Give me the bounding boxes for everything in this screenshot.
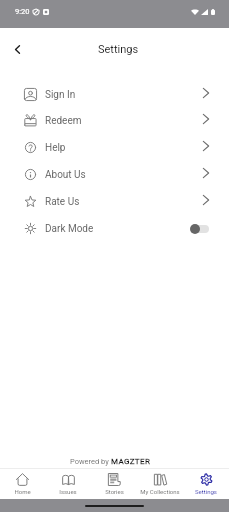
staticText: Help [45, 142, 66, 154]
staticText: My Collections [140, 488, 180, 495]
staticText: About Us [45, 169, 86, 181]
staticText: Issues [59, 488, 77, 495]
button[interactable]: My Collections [137, 469, 183, 499]
staticText: 9:20 [15, 7, 30, 16]
staticText: Redeem [45, 115, 82, 127]
staticText: Settings [195, 488, 217, 495]
button[interactable]: Help [0, 134, 229, 161]
button[interactable]: Rate Us [0, 188, 229, 215]
staticText: Powered by [70, 457, 111, 466]
staticText: MAGZTER [111, 457, 151, 466]
button[interactable]: Issues [45, 469, 91, 499]
button[interactable]: Back [2, 34, 32, 64]
button[interactable]: Sign In [0, 81, 229, 108]
button[interactable]: About Us [0, 161, 229, 188]
button[interactable]: Settings [183, 469, 229, 499]
staticText: Settings [98, 43, 139, 56]
button[interactable]: Redeem [0, 107, 229, 134]
staticText: Home [14, 488, 31, 495]
staticText: Dark Mode [45, 223, 94, 235]
button[interactable]: Home [0, 469, 45, 499]
button[interactable]: Stories [91, 469, 137, 499]
staticText: Sign In [45, 89, 76, 101]
button[interactable]: Toggle dark mode [190, 223, 209, 234]
staticText: Rate Us [45, 196, 80, 208]
staticText: Stories [105, 488, 124, 495]
button[interactable]: Dark Mode [0, 215, 229, 242]
